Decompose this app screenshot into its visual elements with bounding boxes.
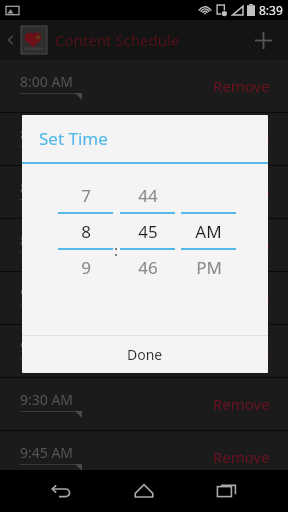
staticText: 8:30 AM: [20, 178, 74, 197]
button[interactable]: Recent apps: [205, 470, 249, 512]
button[interactable]: Back: [39, 470, 83, 512]
staticText: 8:15 AM: [20, 125, 74, 144]
staticText: 9:45 AM: [20, 443, 74, 462]
staticText: Remove: [213, 76, 270, 96]
staticText: 9:00 AM: [20, 284, 74, 303]
button[interactable]: Home: [122, 470, 166, 512]
button[interactable]: Done: [22, 336, 268, 373]
staticText: 45: [138, 220, 158, 243]
staticText: Remove: [213, 447, 270, 467]
button[interactable]: Navigate up: [2, 26, 182, 54]
staticText: AM: [195, 220, 222, 243]
staticText: Remove: [213, 394, 270, 414]
staticText: 9:15 AM: [20, 337, 74, 356]
other: Navigate up: [4, 33, 18, 47]
button[interactable]: Add: [246, 23, 280, 57]
button[interactable]: 9:45 AM: [0, 431, 288, 483]
button[interactable]: AM: [181, 164, 236, 335]
staticText: Content Schedule: [55, 30, 180, 50]
staticText: Remove: [213, 129, 270, 149]
staticText: 46: [138, 256, 158, 279]
button[interactable]: 8:45 AM: [0, 219, 288, 271]
button[interactable]: 9:00 AM: [0, 272, 288, 324]
staticText: 9:30 AM: [20, 390, 74, 409]
staticText: Remove: [213, 341, 270, 361]
staticText: Remove: [213, 182, 270, 202]
staticText: :: [114, 240, 119, 260]
staticText: 44: [138, 184, 158, 207]
staticText: 8:00 AM: [20, 72, 74, 91]
staticText: Remove: [213, 235, 270, 255]
staticText: 9: [81, 256, 91, 279]
staticText: Set Time: [39, 127, 108, 150]
button[interactable]: 8:00 AM: [0, 60, 288, 112]
button[interactable]: 8:15 AM: [0, 113, 288, 165]
staticText: 7: [81, 184, 91, 207]
button[interactable]: 44: [120, 164, 175, 335]
button[interactable]: 7: [58, 164, 113, 335]
button[interactable]: 8:30 AM: [0, 166, 288, 218]
button[interactable]: 9:15 AM: [0, 325, 288, 377]
staticText: Done: [127, 345, 163, 364]
staticText: 8: [81, 220, 91, 243]
button[interactable]: 9:30 AM: [0, 378, 288, 430]
staticText: PM: [196, 256, 222, 279]
staticText: 8:45 AM: [20, 231, 74, 250]
staticText: Remove: [213, 288, 270, 308]
staticText: 8:39: [259, 2, 283, 18]
